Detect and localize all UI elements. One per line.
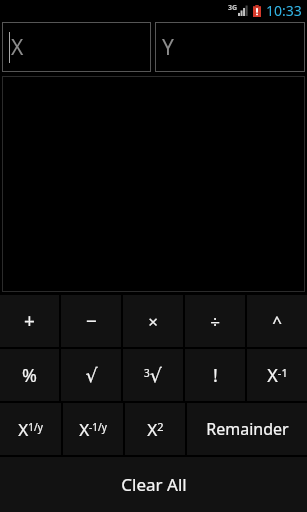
staticText: 10:33 <box>266 1 302 20</box>
button[interactable]: X <box>2 22 151 72</box>
staticText: 3G <box>228 3 238 13</box>
button[interactable]: X2 <box>125 403 185 455</box>
staticText: ^ <box>272 310 282 333</box>
staticText: X-1/y <box>79 418 107 441</box>
button[interactable]: + <box>0 295 59 347</box>
button[interactable]: Remainder <box>187 403 307 455</box>
staticText: ! <box>213 363 218 388</box>
staticText: X2 <box>147 418 164 441</box>
button[interactable]: Clear All <box>0 457 307 512</box>
button[interactable]: X-1 <box>247 349 307 401</box>
staticText: % <box>22 363 37 388</box>
staticText: X1/y <box>18 418 43 441</box>
button[interactable]: Result display <box>2 76 305 292</box>
button[interactable]: X1/y <box>0 403 61 455</box>
staticText: ÷ <box>210 310 220 333</box>
staticText: − <box>86 308 97 334</box>
staticText: √ <box>85 364 98 386</box>
staticText: X-1 <box>267 363 288 388</box>
staticText: Remainder <box>206 418 289 440</box>
button[interactable]: − <box>61 295 121 347</box>
button[interactable]: × <box>123 295 183 347</box>
button[interactable]: % <box>0 349 59 401</box>
staticText: + <box>24 308 35 334</box>
staticText: × <box>148 310 158 333</box>
button[interactable]: ÷ <box>185 295 245 347</box>
button[interactable]: Y <box>155 22 305 72</box>
staticText: 3√ <box>144 364 162 386</box>
button[interactable]: X-1/y <box>63 403 123 455</box>
staticText: X <box>11 33 24 62</box>
button[interactable]: 3√ <box>123 349 183 401</box>
staticText: Y <box>162 33 174 62</box>
button[interactable]: ! <box>185 349 245 401</box>
button[interactable]: ^ <box>247 295 307 347</box>
staticText: Clear All <box>121 473 187 496</box>
button[interactable]: √ <box>61 349 121 401</box>
